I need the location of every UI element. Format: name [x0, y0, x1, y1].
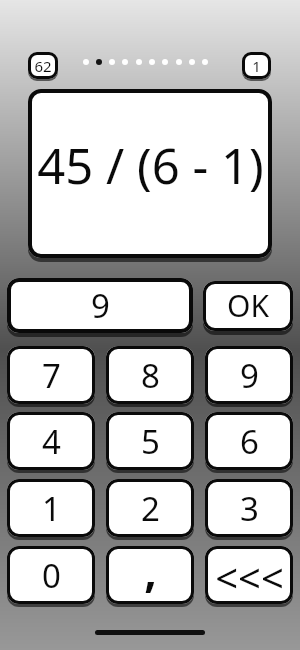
staticText: 8	[141, 353, 160, 398]
staticText: <<<	[215, 550, 284, 604]
button[interactable]: OK	[203, 281, 293, 331]
staticText: 0	[42, 553, 61, 598]
staticText: ,	[144, 540, 157, 598]
staticText: 1	[42, 486, 61, 531]
staticText: 5	[141, 419, 160, 464]
button[interactable]: 2	[106, 479, 194, 537]
staticText: 3	[240, 486, 259, 531]
button[interactable]: 62	[28, 52, 58, 79]
button[interactable]: 9	[205, 346, 293, 404]
button[interactable]: 1	[242, 52, 271, 79]
button[interactable]: 6	[205, 412, 293, 470]
button[interactable]: 45 / (6 - 1)	[28, 89, 272, 258]
button[interactable]: 4	[7, 412, 95, 470]
button[interactable]: 7	[7, 346, 95, 404]
button[interactable]: ,	[106, 546, 194, 604]
staticText: 9	[91, 283, 110, 328]
staticText: 6	[240, 419, 259, 464]
staticText: OK	[227, 285, 269, 326]
staticText: 1	[252, 56, 261, 76]
button[interactable]: 5	[106, 412, 194, 470]
button[interactable]: <<<	[205, 546, 293, 604]
button[interactable]: 3	[205, 479, 293, 537]
staticText: 62	[34, 56, 52, 76]
staticText: 7	[42, 353, 61, 398]
button[interactable]: 1	[7, 479, 95, 537]
button[interactable]: 0	[7, 546, 95, 604]
staticText: 9	[240, 353, 259, 398]
button[interactable]: 8	[106, 346, 194, 404]
staticText: 45 / (6 - 1)	[37, 132, 264, 199]
staticText: 2	[141, 486, 160, 531]
button[interactable]: 9	[7, 278, 193, 333]
staticText: 4	[42, 419, 61, 464]
